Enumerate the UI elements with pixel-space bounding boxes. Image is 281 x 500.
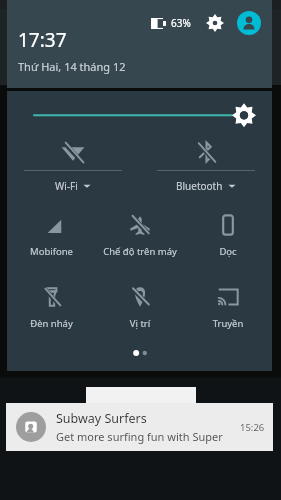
staticText: 63%: [171, 16, 191, 30]
staticText: Get more surfing fun with Super Mystery …: [56, 429, 236, 444]
staticText: 17:37: [18, 27, 67, 53]
button[interactable]: User profile: [237, 11, 261, 35]
button[interactable]: Subway Surfers: [6, 403, 273, 451]
staticText: Bluetooth: [176, 179, 223, 193]
button[interactable]: Mobifone: [7, 205, 96, 277]
staticText: Đèn nháy: [9, 317, 94, 330]
button[interactable]: Truyền: [184, 277, 272, 349]
button[interactable]: Dọc: [184, 205, 272, 277]
staticText: Chế độ trên máy bay: [98, 245, 182, 258]
staticText: 15:26: [240, 421, 265, 434]
button[interactable]: Đèn nháy: [7, 277, 96, 349]
button[interactable]: Vị trí: [96, 277, 184, 349]
button[interactable]: Chế độ trên máy bay: [96, 205, 184, 277]
button[interactable]: Bluetooth: [139, 133, 272, 205]
staticText: Mobifone: [9, 245, 94, 258]
staticText: Truyền: [186, 317, 270, 330]
staticText: Wi-Fi: [55, 179, 78, 193]
staticText: Thứ Hai, 14 tháng 12: [18, 59, 126, 74]
button[interactable]: Wi-Fi: [7, 133, 139, 205]
button[interactable]: Brightness: [7, 91, 272, 133]
staticText: Subway Surfers: [56, 410, 147, 427]
button[interactable]: Settings: [203, 11, 227, 35]
staticText: Dọc: [186, 245, 270, 258]
staticText: Vị trí: [98, 317, 182, 330]
